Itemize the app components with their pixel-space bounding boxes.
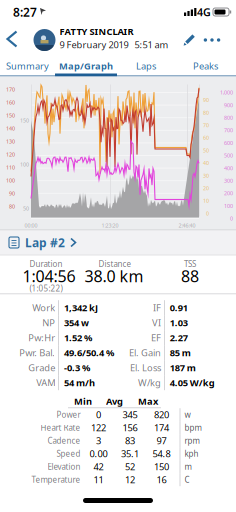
button[interactable]: Lap #2 bbox=[0, 229, 236, 255]
staticText: 16 bbox=[157, 473, 167, 486]
button[interactable]: Peaks bbox=[175, 57, 236, 75]
staticText: m bbox=[184, 461, 191, 472]
staticText: 35.1 bbox=[121, 447, 139, 460]
button[interactable]: Map/Graph bbox=[55, 57, 117, 75]
staticText: 40 bbox=[203, 159, 209, 167]
staticText: 122 bbox=[91, 421, 106, 434]
staticText: 1.03 bbox=[170, 316, 188, 329]
staticText: 30 bbox=[203, 172, 209, 179]
staticText: 80 bbox=[203, 109, 209, 116]
staticText: 50 bbox=[203, 147, 209, 154]
staticText: W/kg bbox=[138, 376, 161, 389]
staticText: 110 bbox=[6, 164, 15, 171]
button[interactable]: More bbox=[200, 28, 224, 52]
staticText: 0 bbox=[230, 215, 233, 222]
staticText: 3 bbox=[96, 434, 101, 447]
staticText: Work bbox=[32, 301, 55, 314]
staticText: rpm bbox=[184, 435, 199, 446]
staticText: FATTY SINCLAIR bbox=[59, 25, 133, 37]
staticText: 54 m/h bbox=[64, 376, 95, 389]
staticText: 1:04:56 bbox=[22, 265, 75, 287]
staticText: 156 bbox=[123, 421, 138, 434]
button[interactable]: Back bbox=[1, 22, 23, 56]
staticText: Summary bbox=[6, 60, 49, 72]
staticText: bpm bbox=[184, 422, 201, 433]
staticText: C bbox=[184, 474, 189, 485]
staticText: 2.27 bbox=[170, 331, 188, 344]
staticText: 0 bbox=[96, 408, 101, 421]
staticText: 11 bbox=[94, 473, 104, 486]
staticText: 00:00 bbox=[24, 222, 37, 229]
staticText: 130 bbox=[6, 138, 15, 145]
staticText: 150 bbox=[20, 117, 29, 124]
staticText: 70 bbox=[203, 122, 209, 129]
staticText: Lap #2 bbox=[25, 234, 65, 250]
staticText: 0.91 bbox=[170, 301, 188, 314]
staticText: 60 bbox=[203, 134, 209, 141]
staticText: 1:23:20 bbox=[101, 222, 118, 229]
staticText: Distance bbox=[98, 259, 131, 269]
staticText: Heart Rate bbox=[41, 422, 81, 433]
staticText: 97 bbox=[157, 434, 167, 447]
button[interactable]: Summary bbox=[0, 57, 55, 75]
staticText: 354 w bbox=[64, 316, 89, 329]
staticText: 0 bbox=[206, 210, 209, 217]
staticText: 90 bbox=[203, 96, 209, 104]
staticText: 88 bbox=[181, 265, 199, 287]
staticText: 100 bbox=[20, 161, 29, 168]
staticText: VAM bbox=[36, 376, 55, 389]
staticText: 500 bbox=[224, 152, 233, 159]
staticText: kph bbox=[184, 448, 198, 459]
staticText: Laps bbox=[136, 60, 156, 72]
staticText: Avg bbox=[106, 395, 123, 407]
staticText: Max bbox=[138, 395, 158, 407]
staticText: 83 bbox=[125, 434, 135, 447]
staticText: NP bbox=[42, 316, 55, 329]
staticText: 42 bbox=[94, 460, 104, 473]
staticText: 49.6/50.4 % bbox=[64, 346, 114, 359]
staticText: 150 bbox=[154, 460, 169, 473]
staticText: 300 bbox=[224, 177, 233, 184]
staticText: El. Loss bbox=[130, 361, 161, 374]
staticText: 1,000 bbox=[220, 89, 233, 96]
staticText: 10 bbox=[203, 197, 209, 204]
staticText: 54.8 bbox=[153, 447, 171, 460]
staticText: 52 bbox=[125, 460, 135, 473]
staticText: IF bbox=[153, 301, 161, 314]
staticText: Duration bbox=[29, 259, 62, 269]
staticText: 38.0 km bbox=[84, 265, 143, 287]
staticText: 150 bbox=[6, 112, 15, 119]
staticText: 12 bbox=[125, 473, 135, 486]
staticText: 700 bbox=[224, 127, 233, 134]
staticText: 90 bbox=[9, 190, 15, 197]
staticText: 170 bbox=[6, 86, 15, 93]
staticText: VI bbox=[152, 316, 161, 329]
staticText: EF bbox=[151, 331, 161, 344]
staticText: Pw:Hr bbox=[28, 331, 55, 344]
button[interactable]: Laps bbox=[117, 57, 175, 75]
staticText: 0.00 bbox=[90, 447, 108, 460]
staticText: 4G bbox=[197, 5, 211, 19]
staticText: Temperature bbox=[32, 474, 81, 485]
staticText: 50 bbox=[23, 205, 29, 212]
staticText: 2:46:40 bbox=[178, 222, 195, 229]
staticText: Peaks bbox=[193, 60, 218, 72]
staticText: 900 bbox=[224, 102, 233, 109]
button[interactable]: FATTY SINCLAIR bbox=[33, 27, 168, 53]
staticText: Cadence bbox=[48, 435, 81, 446]
staticText: Grade bbox=[28, 361, 55, 374]
staticText: 400 bbox=[224, 165, 233, 172]
staticText: TSS bbox=[184, 259, 196, 269]
staticText: 200 bbox=[224, 190, 233, 197]
staticText: 100 bbox=[224, 202, 233, 209]
staticText: 1.52 % bbox=[64, 331, 92, 344]
staticText: Map/Graph bbox=[59, 60, 113, 72]
staticText: w bbox=[184, 409, 190, 420]
button[interactable]: Edit bbox=[183, 32, 197, 47]
staticText: 345 bbox=[123, 408, 138, 421]
staticText: 174 bbox=[154, 421, 169, 434]
staticText: 600 bbox=[224, 139, 233, 146]
staticText: 820 bbox=[154, 408, 169, 421]
staticText: 1,342 kJ bbox=[64, 301, 98, 314]
staticText: 20 bbox=[203, 185, 209, 192]
